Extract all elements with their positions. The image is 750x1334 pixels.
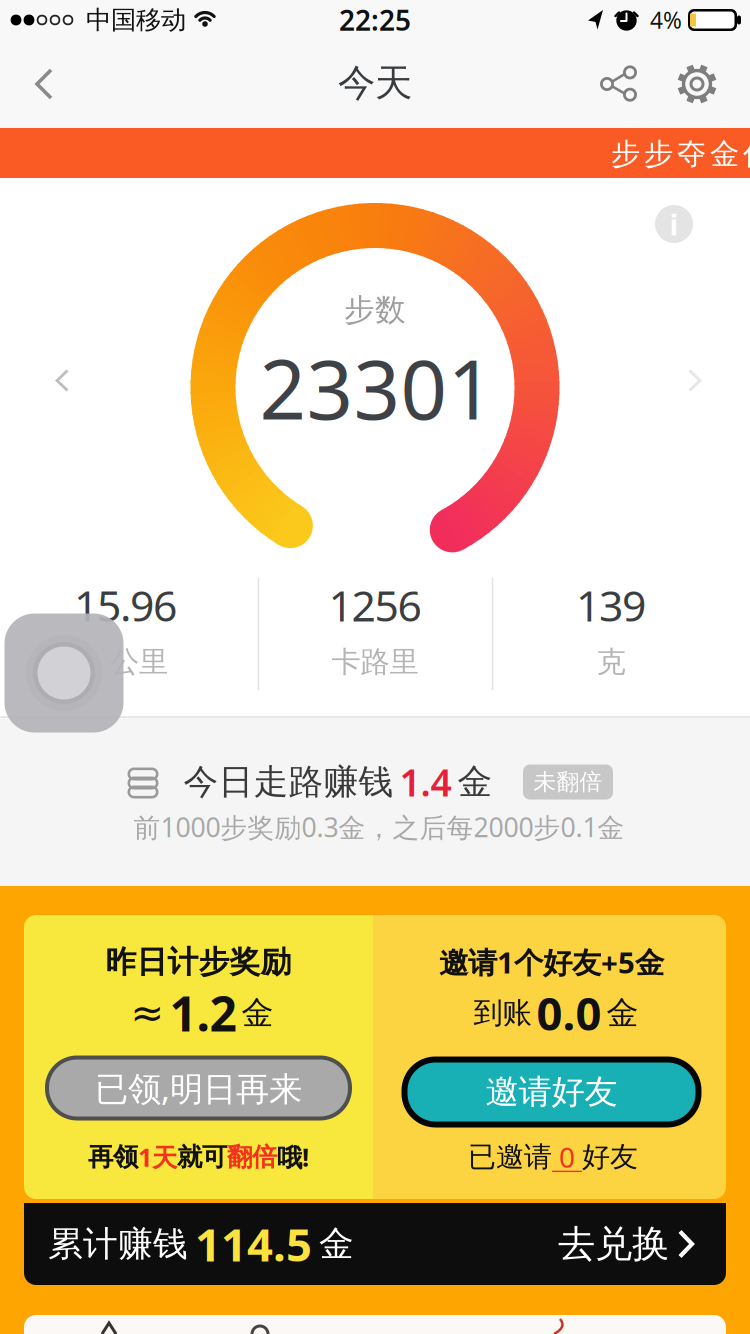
staticText: i	[669, 204, 678, 243]
staticText: 114.5	[195, 1214, 312, 1274]
staticText: 139	[576, 577, 646, 633]
staticText: 去兑换	[558, 1221, 669, 1267]
staticText: 公里	[110, 644, 168, 680]
staticText: 4%	[650, 5, 682, 35]
staticText: 卡路里	[331, 644, 418, 680]
staticText: 克	[596, 644, 625, 680]
button[interactable]: 累计赚钱	[24, 1203, 726, 1285]
staticText: 金	[457, 761, 492, 803]
button[interactable]: Share	[594, 60, 642, 108]
button[interactable]: 邀请好友	[401, 1056, 701, 1127]
staticText: 再领	[88, 1141, 138, 1172]
staticText: 15.96	[74, 577, 177, 633]
button[interactable]: Info	[652, 202, 696, 246]
button[interactable]: Previous day	[40, 359, 84, 403]
staticText: 23301	[259, 334, 494, 442]
staticText: 已邀请	[468, 1140, 552, 1174]
button[interactable]: Back	[22, 62, 66, 106]
staticText: ≈	[130, 990, 164, 1036]
button[interactable]: AssistiveTouch	[4, 613, 123, 732]
staticText: 步数	[344, 291, 406, 329]
staticText: 好友	[582, 1140, 638, 1174]
staticText: 1.4	[399, 757, 451, 807]
staticText: 已领,明日再来	[95, 1066, 302, 1110]
button[interactable]: 已领,明日再来	[45, 1055, 352, 1120]
staticText: 邀请1个好友+5金	[439, 942, 664, 981]
staticText: 0.0	[536, 983, 601, 1043]
staticText: 昨日计步奖励	[105, 943, 291, 981]
staticText: 步步夺金任何	[611, 136, 750, 172]
staticText: 1天	[138, 1140, 177, 1174]
staticText: 1.2	[169, 981, 236, 1045]
staticText: 前1000步奖励0.3金，之后每2000步0.1金	[133, 809, 624, 845]
staticText: 1256	[328, 577, 421, 633]
staticText: 邀请好友	[485, 1071, 617, 1112]
button[interactable]: Settings	[673, 60, 721, 108]
staticText: 22:25	[339, 1, 411, 39]
staticText: 金	[606, 993, 638, 1033]
staticText: 金	[319, 1223, 354, 1265]
staticText: 中国移动	[86, 4, 186, 35]
staticText: 未翻倍	[533, 768, 602, 796]
staticText: 哦!	[277, 1140, 309, 1174]
staticText: 今天	[338, 60, 412, 106]
staticText: 金	[241, 993, 273, 1033]
button[interactable]: Next day	[673, 359, 717, 403]
staticText: 翻倍	[227, 1141, 277, 1172]
staticText: 0	[552, 1138, 582, 1176]
staticText: 累计赚钱	[48, 1223, 188, 1265]
staticText: 就可	[177, 1141, 227, 1172]
staticText: 到账	[473, 995, 531, 1031]
staticText: 今日走路赚钱	[183, 761, 393, 803]
